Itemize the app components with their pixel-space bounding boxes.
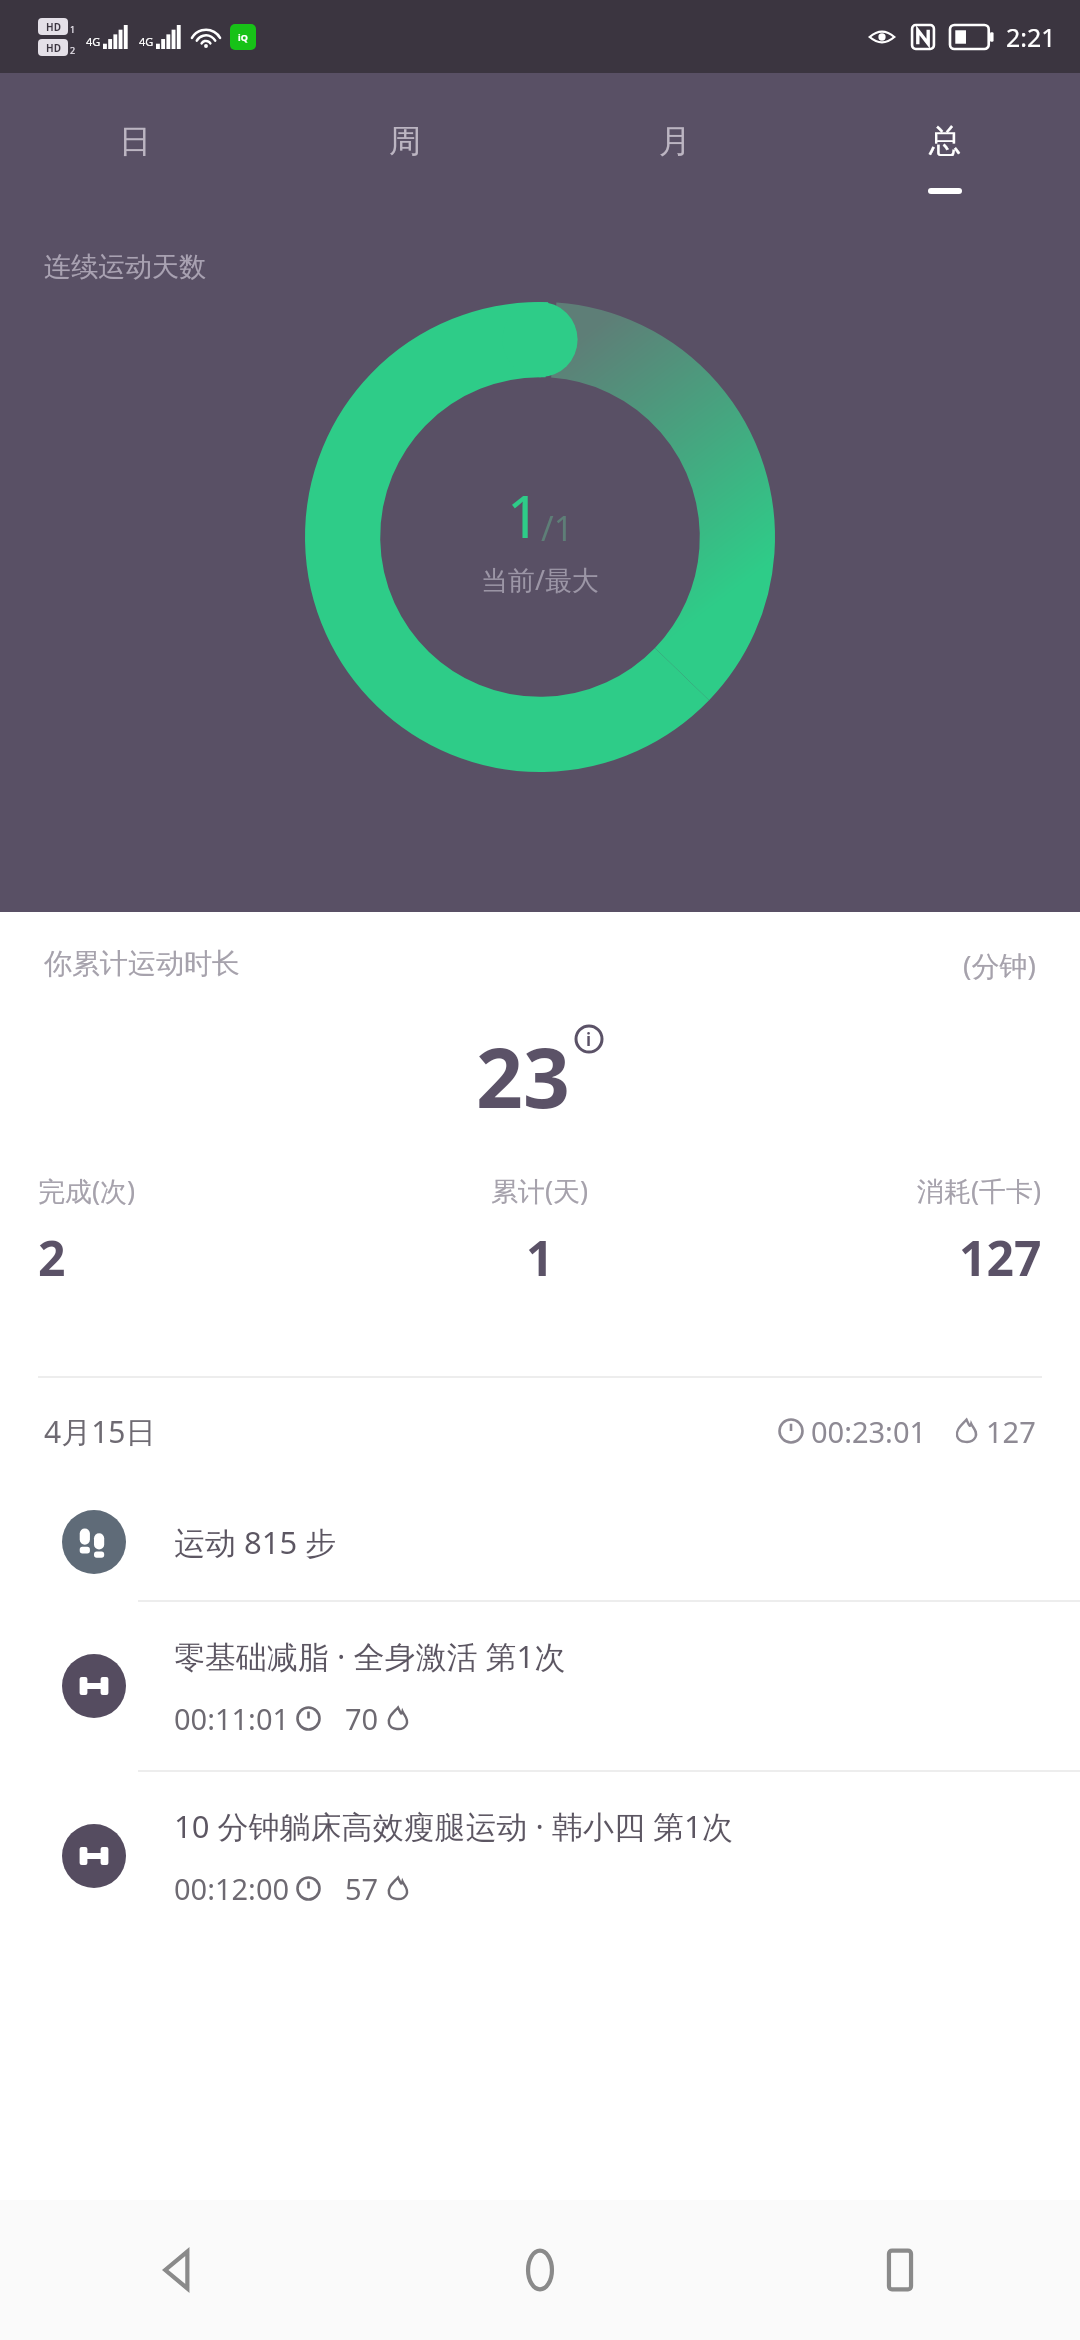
button[interactable]: 10 分钟躺床高效瘦腿运动 · 韩小四 第1次 — [0, 1772, 1080, 1940]
staticText: 127 — [959, 1225, 1042, 1290]
staticText: 连续运动天数 — [44, 250, 206, 284]
staticText: 23 — [476, 1020, 570, 1132]
staticText: 2:21 — [1006, 20, 1056, 54]
staticText: 消耗(千卡) — [917, 1172, 1042, 1209]
staticText: 4G — [139, 34, 154, 49]
staticText: 日 — [119, 121, 151, 161]
staticText: 00:11:01 — [174, 1699, 290, 1738]
staticText: 周 — [389, 121, 421, 161]
staticText: 2 — [38, 1225, 66, 1290]
staticText: 1 — [526, 1225, 554, 1290]
staticText: 127 — [986, 1412, 1036, 1451]
button[interactable]: 日 — [0, 73, 270, 208]
staticText: 你累计运动时长 — [44, 946, 240, 981]
button[interactable]: 运动 815 步 — [0, 1484, 1080, 1600]
staticText: 70 — [345, 1699, 379, 1738]
button[interactable]: 周 — [270, 73, 540, 208]
button[interactable]: 月 — [540, 73, 810, 208]
staticText: HD — [46, 20, 61, 34]
staticText: 10 分钟躺床高效瘦腿运动 · 韩小四 第1次 — [174, 1805, 733, 1847]
staticText: iQ — [238, 31, 248, 43]
staticText: 累计(天) — [491, 1172, 589, 1209]
staticText: 4G — [86, 34, 101, 49]
staticText: HD — [46, 41, 61, 55]
staticText: 1 — [70, 23, 76, 35]
button[interactable]: 说明 — [574, 1024, 604, 1054]
staticText: 完成(次) — [38, 1172, 136, 1209]
staticText: 零基础减脂 · 全身激活 第1次 — [174, 1635, 566, 1677]
staticText: (分钟) — [963, 946, 1036, 984]
staticText: 当前/最大 — [481, 561, 600, 598]
staticText: 4月15日 — [44, 1411, 156, 1452]
button[interactable]: 总 — [810, 73, 1080, 208]
staticText: 57 — [345, 1869, 379, 1908]
staticText: 00:23:01 — [811, 1412, 927, 1451]
staticText: 00:12:00 — [174, 1869, 290, 1908]
staticText: 运动 815 步 — [174, 1521, 337, 1563]
staticText: 月 — [659, 121, 691, 161]
staticText: 2 — [70, 44, 76, 56]
button[interactable]: 最近任务 — [720, 2200, 1080, 2340]
staticText: /1 — [541, 505, 574, 551]
staticText: 总 — [929, 121, 961, 161]
staticText: 1 — [507, 476, 541, 555]
staticText: i — [586, 1028, 592, 1051]
button[interactable]: 返回 — [0, 2200, 360, 2340]
button[interactable]: 零基础减脂 · 全身激活 第1次 — [0, 1602, 1080, 1770]
button[interactable]: 主页 — [360, 2200, 720, 2340]
